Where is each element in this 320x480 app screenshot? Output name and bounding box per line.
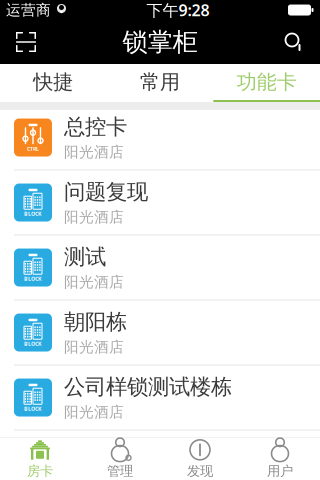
button[interactable]: 快捷 xyxy=(0,64,107,102)
button[interactable]: BLOCK xyxy=(0,305,320,370)
staticText: 管理 xyxy=(107,463,133,479)
button[interactable]: LAYER xyxy=(0,435,320,480)
staticText: 阳光酒店 xyxy=(64,403,124,421)
button[interactable]: 功能卡 xyxy=(213,64,320,102)
staticText: BLOCK xyxy=(24,275,42,282)
staticText: 用户 xyxy=(267,463,293,479)
staticText: 公司样锁测试楼栋 xyxy=(64,374,232,400)
button[interactable]: 用户 xyxy=(240,438,320,480)
staticText: 朝阳栋 xyxy=(64,309,127,335)
button[interactable]: BLOCK xyxy=(0,240,320,305)
button[interactable]: 管理 xyxy=(80,438,160,480)
staticText: 下午9:28 xyxy=(146,0,209,21)
button[interactable]: CTRL xyxy=(0,110,320,175)
staticText: 测试 xyxy=(64,244,106,270)
staticText: 快捷 xyxy=(33,70,73,94)
button[interactable]: BLOCK xyxy=(0,175,320,240)
staticText: 房卡 xyxy=(27,463,53,479)
staticText: 阳光酒店 xyxy=(64,273,124,291)
staticText: 发现 xyxy=(187,463,213,479)
staticText: LAYER xyxy=(25,470,40,477)
button[interactable]: 扫一扫 xyxy=(4,20,48,64)
staticText: 功能卡 xyxy=(237,70,297,94)
button[interactable]: 常用 xyxy=(107,64,213,102)
button[interactable]: BLOCK xyxy=(0,370,320,435)
staticText: BLOCK xyxy=(24,210,42,217)
staticText: BLOCK xyxy=(24,405,42,412)
staticText: 总控卡 xyxy=(64,114,127,140)
button[interactable]: 发现 xyxy=(160,438,240,480)
button[interactable]: 房卡 xyxy=(0,438,80,480)
staticText: 阳光酒店 xyxy=(64,143,124,161)
staticText: 运营商 xyxy=(6,1,51,19)
staticText: BLOCK xyxy=(24,340,42,347)
staticText: 问题复现 xyxy=(64,179,148,205)
button[interactable]: 搜索 xyxy=(272,20,316,64)
staticText: 阳光酒店 xyxy=(64,208,124,226)
staticText: 阳光酒店 xyxy=(64,469,124,480)
staticText: 常用 xyxy=(140,70,180,94)
staticText: 阳光酒店 xyxy=(64,338,124,356)
staticText: 锁掌柜 xyxy=(122,26,197,57)
staticText: CTRL xyxy=(27,145,39,152)
